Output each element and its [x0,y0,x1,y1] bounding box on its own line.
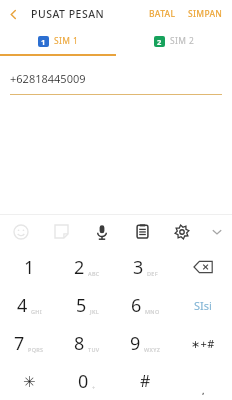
button[interactable]: Stickers [41,215,82,248]
button[interactable]: 4 [0,286,58,324]
staticText: 4 [17,293,28,318]
staticText: ∗+# [191,336,215,351]
staticText: SIsi [194,298,212,313]
staticText: 2 [157,37,162,47]
staticText: PQRS [28,346,44,353]
button[interactable]: Clipboard [122,215,162,248]
button[interactable]: ✳ [0,362,58,400]
button[interactable]: 7 [0,324,58,362]
staticText: 1 [41,37,46,47]
button[interactable]: BATAL [143,2,182,26]
staticText: 7 [14,331,25,356]
staticText: TUV [88,346,100,353]
staticText: # [140,370,151,392]
button[interactable]: 2 [58,248,116,286]
button[interactable]: SIsi [174,286,232,324]
staticText: JKL [90,308,99,315]
staticText: + [92,384,96,391]
button[interactable]: 5 [58,286,116,324]
button[interactable]: Backspace [174,248,232,286]
staticText: 3 [133,255,144,280]
staticText: 0 [78,369,89,394]
button[interactable]: 3 [116,248,174,286]
staticText: PUSAT PESAN [31,7,105,21]
button[interactable]: Symbols [174,324,232,362]
staticText: +62818445009 [10,71,86,86]
button[interactable]: +62818445009 [10,56,222,95]
button[interactable]: 1 [0,248,58,286]
staticText: 9 [130,331,141,356]
button[interactable]: 2 [116,28,232,54]
staticText: 8 [74,331,85,356]
button[interactable]: Settings [162,215,202,248]
button[interactable]: # [116,362,174,400]
staticText: WXYZ [144,346,161,353]
staticText: , [202,384,205,396]
button[interactable]: Voice input [82,215,122,248]
staticText: ✳ [23,373,36,390]
button[interactable]: Hide keyboard [202,215,232,248]
button[interactable]: SIMPAN [182,2,229,26]
staticText: 2 [74,255,85,280]
staticText: SIM 2 [170,35,195,47]
button[interactable]: Emoji [0,215,41,248]
button[interactable]: 6 [116,286,174,324]
button[interactable]: Back [0,0,26,28]
staticText: 5 [76,293,87,318]
staticText: SIMPAN [188,8,223,20]
staticText: 1 [24,255,35,280]
button[interactable]: 9 [116,324,174,362]
staticText: MNO [145,308,160,315]
staticText: ABC [88,270,100,277]
button[interactable]: Comma [174,362,232,400]
staticText: DEF [147,270,158,277]
staticText: GHI [31,308,42,315]
button[interactable]: 1 [0,28,116,54]
staticText: BATAL [149,8,176,20]
staticText: 6 [131,293,142,318]
staticText: SIM 1 [54,35,79,47]
button[interactable]: 8 [58,324,116,362]
button[interactable]: 0 [58,362,116,400]
